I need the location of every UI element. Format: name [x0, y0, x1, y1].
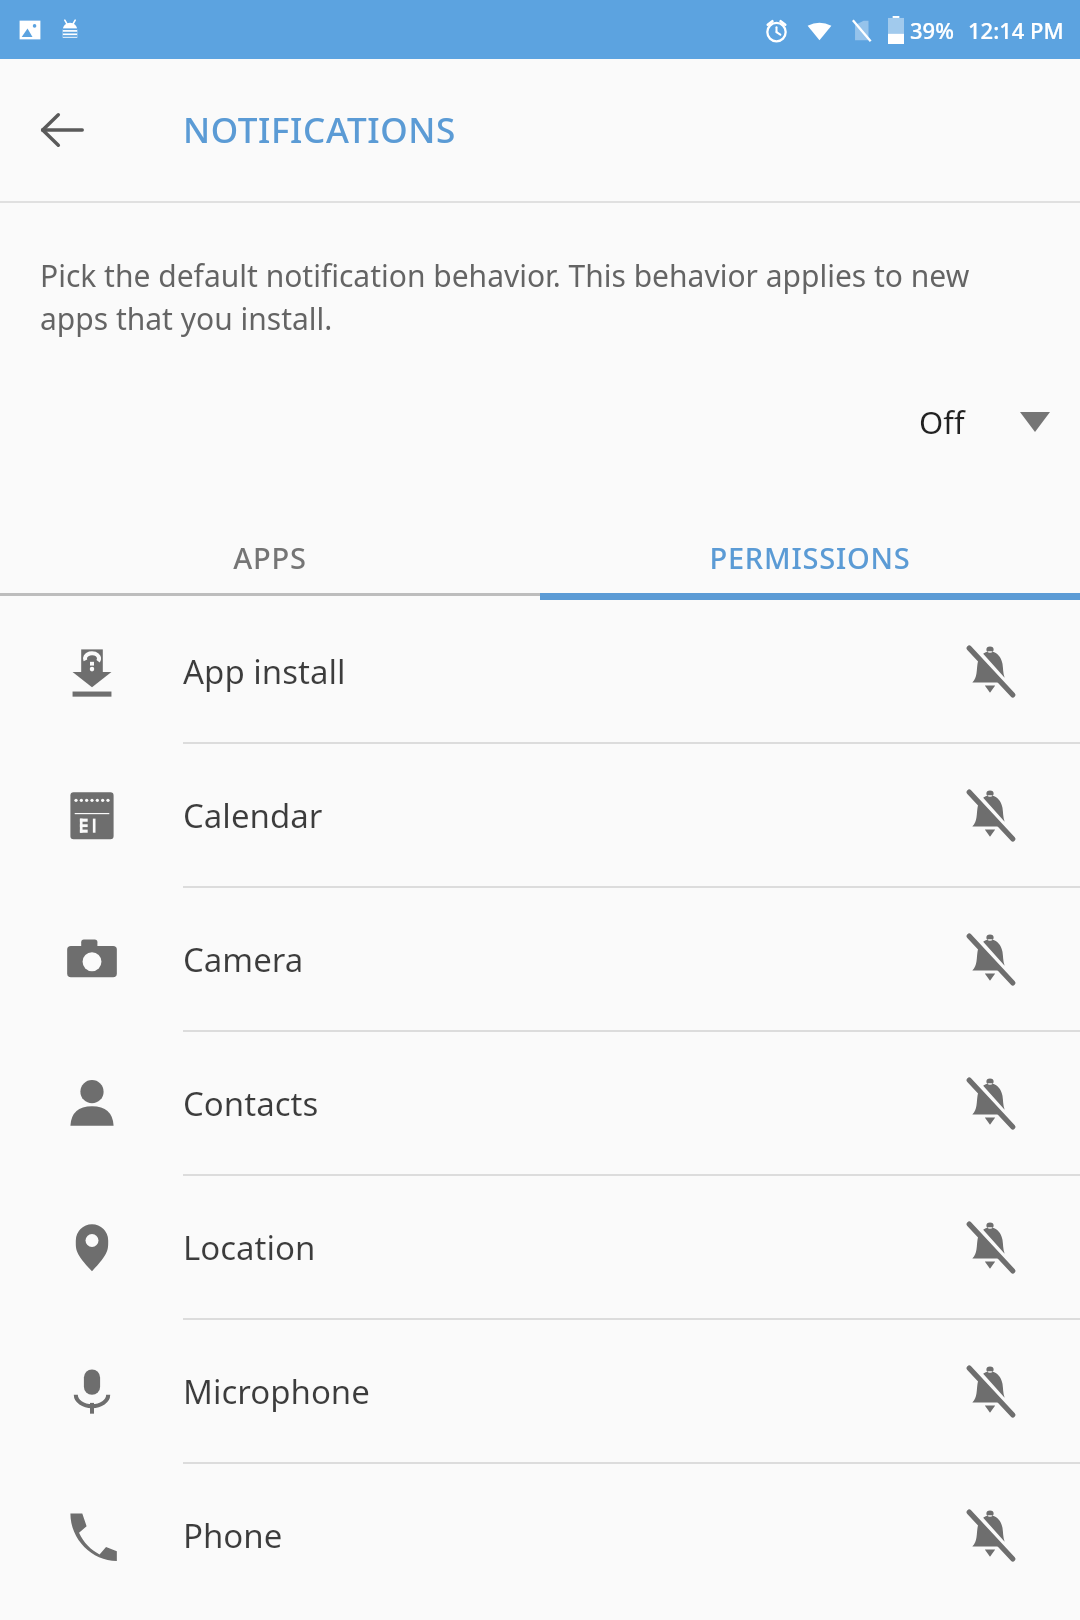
other: Notifications off [964, 1509, 1016, 1561]
staticText: App install [183, 649, 900, 694]
staticText: 12:14 PM [968, 15, 1064, 45]
staticText: NOTIFICATIONS [183, 106, 456, 154]
staticText: Microphone [183, 1369, 900, 1414]
other: Notifications off [964, 1221, 1016, 1273]
staticText: Pick the default notification behavior. … [40, 255, 1038, 339]
staticText: Location [183, 1225, 900, 1270]
button[interactable]: Camera [0, 888, 1080, 1032]
button[interactable]: App install [0, 600, 1080, 744]
button[interactable]: Contacts [0, 1032, 1080, 1176]
other: Notifications off [964, 789, 1016, 841]
button[interactable]: APPS [0, 521, 540, 593]
staticText: Contacts [183, 1081, 900, 1126]
button[interactable]: Phone [0, 1464, 1080, 1606]
button[interactable]: Off [919, 401, 1050, 443]
staticText: Off [919, 401, 965, 443]
staticText: Phone [183, 1513, 900, 1558]
other: Notifications off [964, 1365, 1016, 1417]
button[interactable]: Back [26, 94, 98, 166]
other: Notifications off [964, 645, 1016, 697]
button[interactable]: PERMISSIONS [540, 521, 1080, 593]
staticText: PERMISSIONS [709, 538, 911, 577]
other: Notifications off [964, 933, 1016, 985]
staticText: 39% [910, 15, 954, 45]
button[interactable]: Calendar [0, 744, 1080, 888]
button[interactable]: Location [0, 1176, 1080, 1320]
staticText: APPS [233, 538, 307, 577]
staticText: Camera [183, 937, 900, 982]
other: Notifications off [964, 1077, 1016, 1129]
staticText: Calendar [183, 793, 900, 838]
button[interactable]: Microphone [0, 1320, 1080, 1464]
